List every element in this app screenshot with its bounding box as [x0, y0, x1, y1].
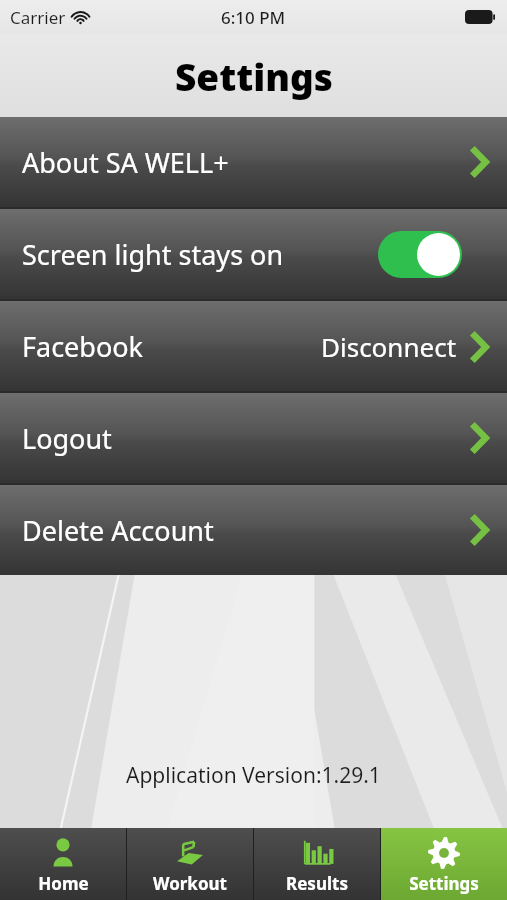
staticText: Workout — [153, 872, 227, 895]
staticText: Screen light stays on — [22, 236, 284, 273]
button[interactable]: About SA WELL+ — [0, 117, 507, 207]
button[interactable]: Screen light stays on — [0, 209, 507, 299]
staticText: Application Version:1.29.1 — [126, 761, 381, 790]
button[interactable]: Facebook — [0, 301, 507, 391]
staticText: Home — [38, 872, 89, 895]
button[interactable]: Settings — [381, 828, 507, 900]
button[interactable]: Logout — [0, 393, 507, 483]
staticText: Settings — [409, 872, 479, 895]
staticText: Carrier — [10, 6, 66, 29]
button[interactable]: Workout — [127, 828, 253, 900]
button[interactable]: Home — [0, 828, 126, 900]
staticText: Settings — [175, 51, 333, 101]
button[interactable]: Results — [254, 828, 380, 900]
staticText: Delete Account — [22, 512, 214, 549]
staticText: About SA WELL+ — [22, 144, 229, 181]
button[interactable]: Delete Account — [0, 485, 507, 575]
staticText: Disconnect — [321, 329, 457, 364]
other: Screen light toggle, on — [378, 231, 462, 278]
staticText: 6:10 PM — [221, 6, 286, 29]
staticText: Results — [286, 872, 348, 895]
staticText: Logout — [22, 420, 112, 457]
staticText: Facebook — [22, 328, 144, 365]
